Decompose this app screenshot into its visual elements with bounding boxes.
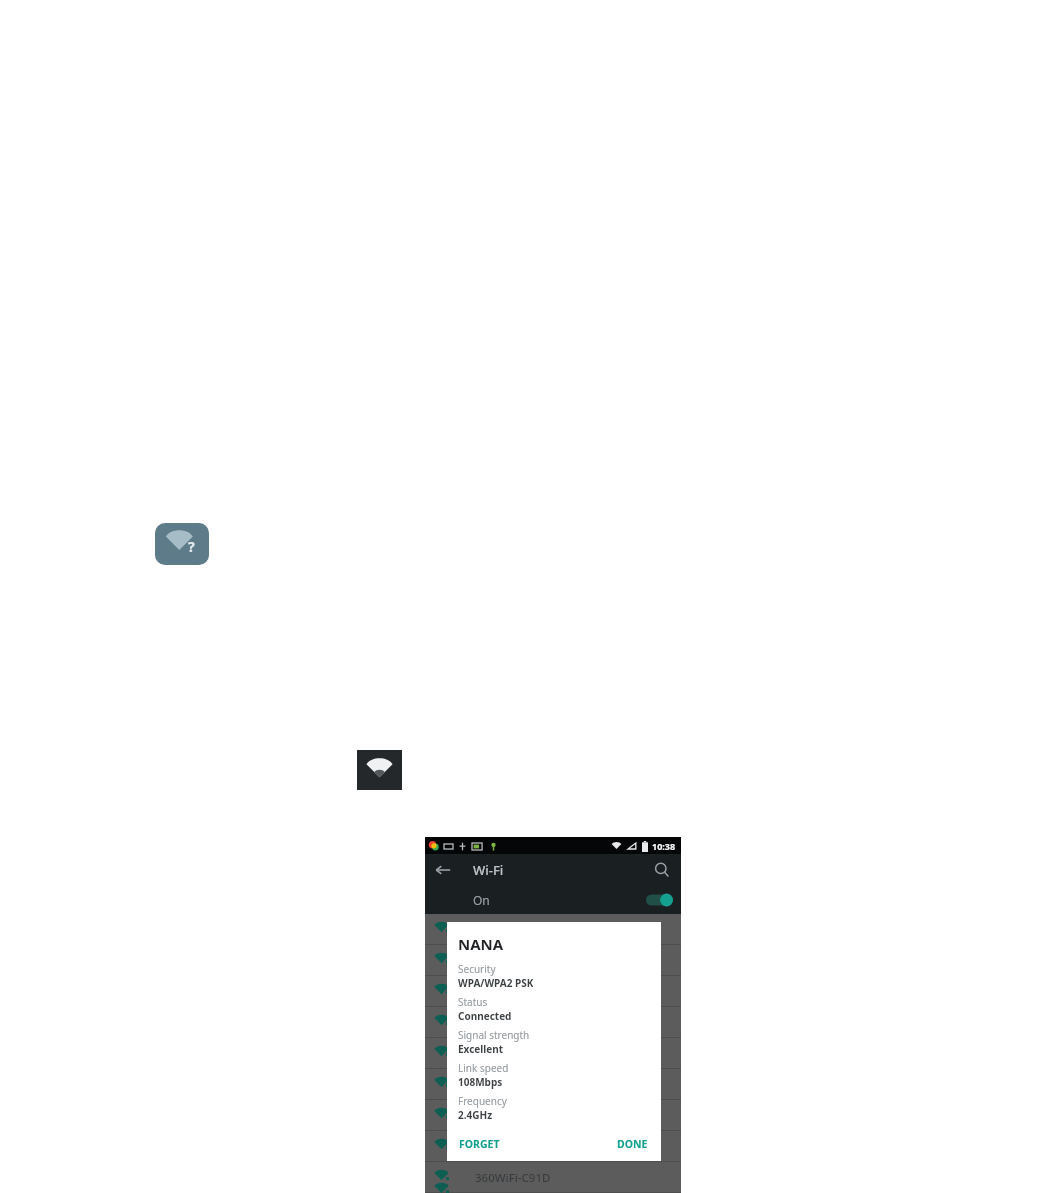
staticText: On bbox=[473, 892, 490, 908]
staticText: 2.4GHz bbox=[458, 1108, 493, 1122]
staticText: FORGET bbox=[459, 1137, 500, 1151]
button[interactable] bbox=[425, 1038, 681, 1069]
button[interactable]: Back bbox=[431, 858, 455, 882]
staticText: WPA/WPA2 PSK bbox=[458, 976, 534, 990]
button[interactable]: FORGET bbox=[458, 1134, 501, 1154]
staticText: Link speed bbox=[458, 1061, 509, 1075]
button[interactable]: Wi-Fi connected bbox=[357, 750, 402, 790]
button[interactable]: DONE bbox=[616, 1134, 649, 1154]
button[interactable]: Wi-Fi unknown network bbox=[155, 523, 209, 565]
staticText: 360WiFi-VC bbox=[475, 1139, 536, 1155]
staticText: NANA bbox=[458, 934, 504, 954]
staticText: 360WiFi-C91D bbox=[475, 1170, 551, 1186]
staticText: DONE bbox=[617, 1137, 648, 1151]
staticText: 10:38 bbox=[652, 840, 676, 852]
staticText: Status bbox=[458, 995, 488, 1009]
staticText: Excellent bbox=[458, 1042, 504, 1056]
button[interactable] bbox=[425, 914, 681, 945]
button[interactable] bbox=[425, 1100, 681, 1131]
button[interactable]: On bbox=[425, 885, 681, 914]
staticText: Security bbox=[458, 962, 496, 976]
staticText: Wi-Fi bbox=[473, 861, 504, 879]
button[interactable] bbox=[425, 1007, 681, 1038]
button[interactable]: Search bbox=[652, 860, 672, 880]
staticText: Frequency bbox=[458, 1094, 507, 1108]
button[interactable]: 360WiFi-C91D bbox=[425, 1162, 681, 1193]
staticText: Signal strength bbox=[458, 1028, 530, 1042]
button[interactable]: 360WiFi-VC bbox=[425, 1131, 681, 1162]
staticText: ? bbox=[188, 537, 195, 556]
other: Wi-Fi toggle, on bbox=[646, 893, 673, 907]
button[interactable] bbox=[425, 976, 681, 1007]
staticText: 108Mbps bbox=[458, 1075, 503, 1089]
button[interactable] bbox=[425, 945, 681, 976]
button[interactable] bbox=[425, 1069, 681, 1100]
staticText: Connected bbox=[458, 1009, 512, 1023]
